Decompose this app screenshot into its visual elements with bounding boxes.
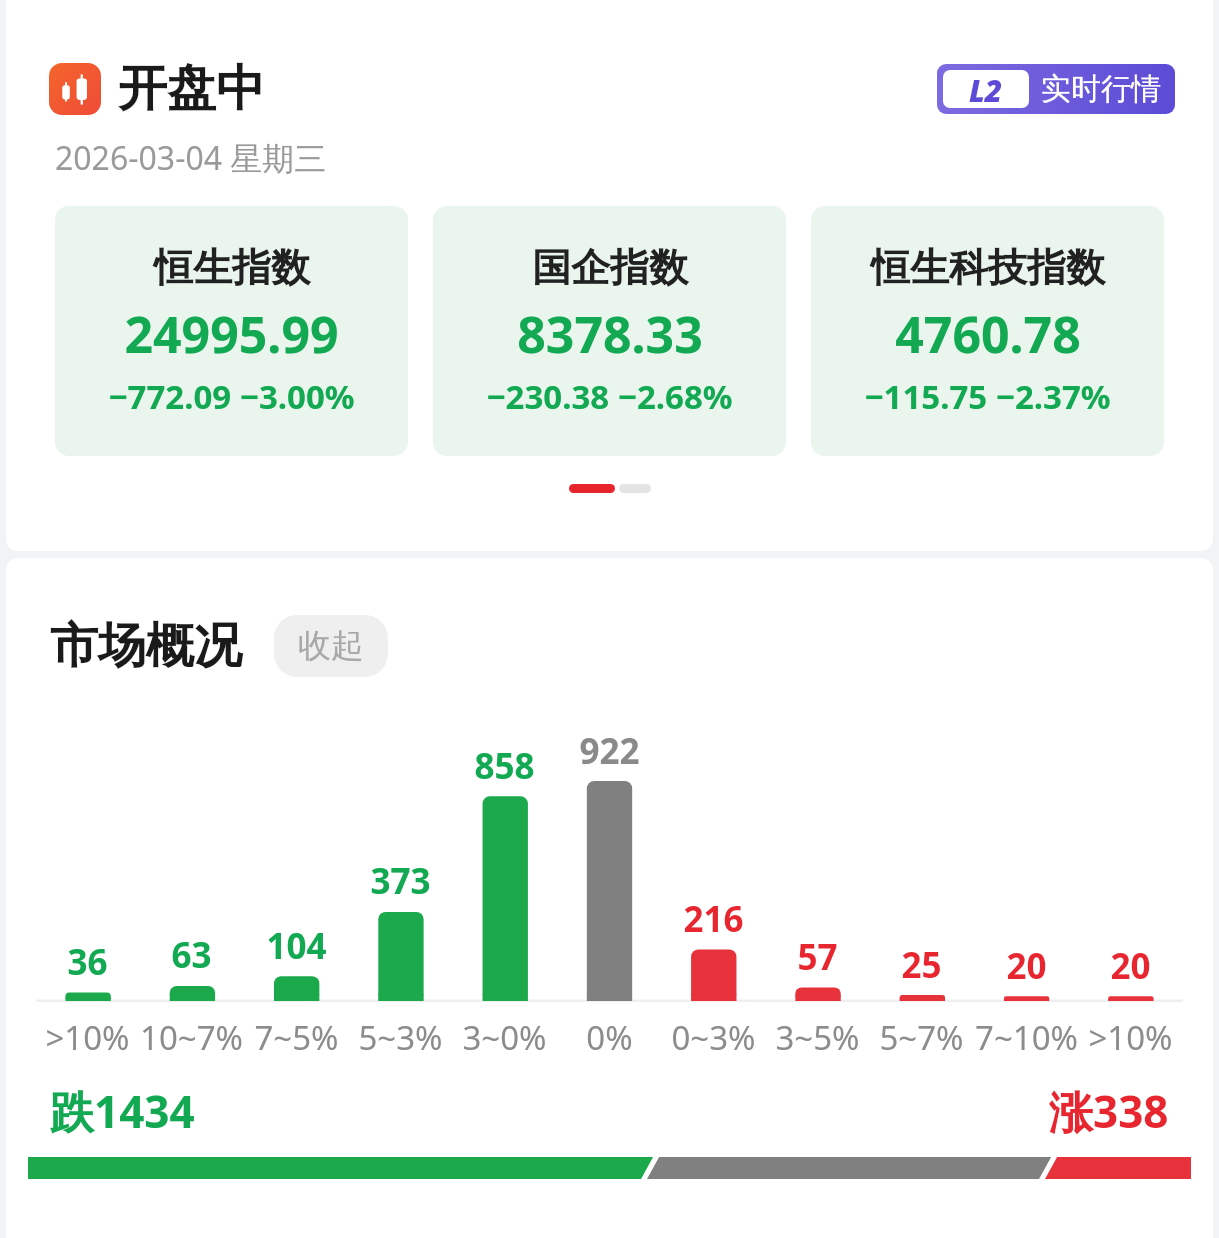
staticText: 7~5% — [254, 1015, 339, 1060]
staticText: 24995.99 — [124, 300, 339, 368]
staticText: 7~10% — [975, 1015, 1078, 1060]
staticText: L2 — [969, 70, 1003, 108]
staticText: 2026-03-04 星期三 — [55, 136, 327, 180]
staticText: 5~3% — [358, 1015, 443, 1060]
button[interactable]: 国企指数 — [433, 206, 786, 456]
staticText: 实时行情 — [1041, 70, 1161, 108]
staticText: 57 — [797, 933, 838, 981]
staticText: 恒生指数 — [154, 243, 310, 292]
staticText: 0~3% — [671, 1015, 756, 1060]
button[interactable]: 恒生指数 — [55, 206, 408, 456]
staticText: >10% — [1088, 1015, 1173, 1060]
staticText: −115.75 −2.37% — [864, 374, 1111, 419]
staticText: 10~7% — [140, 1015, 243, 1060]
staticText: −772.09 −3.00% — [108, 374, 355, 419]
staticText: 涨338 — [1049, 1081, 1169, 1141]
staticText: 国企指数 — [532, 243, 688, 292]
staticText: 恒生科技指数 — [871, 243, 1105, 292]
staticText: 3~5% — [775, 1015, 860, 1060]
staticText: −230.38 −2.68% — [486, 374, 733, 419]
staticText: 104 — [266, 922, 327, 970]
staticText: 5~7% — [879, 1015, 964, 1060]
button[interactable]: 恒生科技指数 — [811, 206, 1164, 456]
staticText: 跌1434 — [50, 1081, 195, 1141]
staticText: 20 — [1110, 942, 1151, 990]
staticText: 216 — [683, 895, 744, 943]
staticText: 25 — [901, 941, 942, 989]
button[interactable]: 收起 — [274, 615, 388, 677]
staticText: 收起 — [298, 625, 364, 667]
staticText: 8378.33 — [517, 300, 703, 368]
staticText: 3~0% — [462, 1015, 547, 1060]
staticText: 市场概况 — [50, 616, 242, 676]
button[interactable]: L2 — [937, 64, 1175, 114]
staticText: 开盘中 — [118, 58, 265, 120]
staticText: 20 — [1006, 942, 1047, 990]
staticText: 4760.78 — [895, 300, 1081, 368]
staticText: 858 — [474, 742, 535, 790]
staticText: 373 — [370, 857, 431, 905]
staticText: 63 — [171, 931, 212, 979]
staticText: >10% — [45, 1015, 130, 1060]
staticText: 0% — [586, 1015, 633, 1060]
staticText: 36 — [67, 938, 108, 986]
staticText: 922 — [579, 727, 640, 775]
other: Market status — [49, 63, 101, 115]
